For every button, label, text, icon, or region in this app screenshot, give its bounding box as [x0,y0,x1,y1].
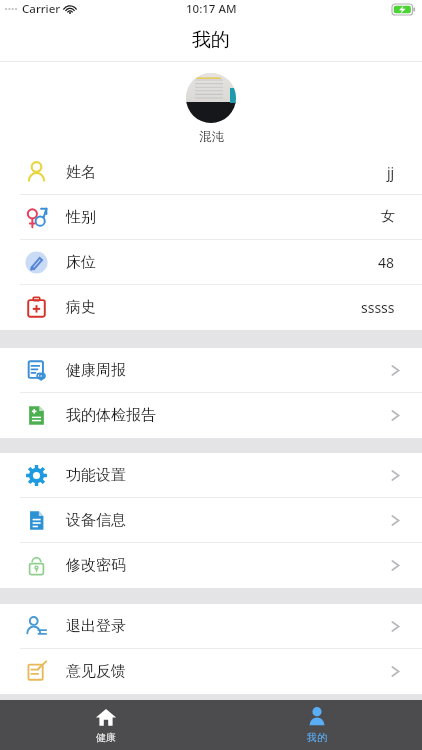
button[interactable]: 健康 [0,700,211,750]
staticText: 性别 [66,208,96,227]
staticText: 功能设置 [66,466,126,485]
button[interactable]: 退出登录 [0,604,422,648]
staticText: 48 [378,253,395,272]
button[interactable]: 床位 [0,240,422,284]
button[interactable]: 我的体检报告 [0,393,422,438]
staticText: sssss [361,298,395,317]
staticText: 床位 [66,253,96,272]
staticText: 女 [381,208,395,226]
staticText: 健康周报 [66,361,126,380]
staticText: 设备信息 [66,511,126,530]
button[interactable]: 病史 [0,285,422,330]
staticText: 我的 [307,731,327,744]
button[interactable]: 功能设置 [0,453,422,497]
staticText: 病史 [66,298,96,317]
staticText: 姓名 [66,163,96,182]
button[interactable]: 健康周报 [0,348,422,392]
staticText: 10:17 AM [186,1,237,17]
button[interactable]: 混沌 [0,62,422,150]
button[interactable]: 修改密码 [0,543,422,588]
button[interactable]: 姓名 [0,150,422,194]
staticText: Carrier [22,1,61,17]
staticText: 我的体检报告 [66,406,156,425]
staticText: 混沌 [199,129,224,145]
staticText: jj [387,163,395,182]
button[interactable]: 意见反馈 [0,649,422,694]
button[interactable]: 设备信息 [0,498,422,542]
staticText: 意见反馈 [66,662,126,681]
staticText: 我的 [192,28,230,52]
button[interactable]: 我的 [211,700,422,750]
staticText: 健康 [96,731,116,744]
staticText: 退出登录 [66,617,126,636]
staticText: 修改密码 [66,556,126,575]
button[interactable]: 性别 [0,195,422,239]
